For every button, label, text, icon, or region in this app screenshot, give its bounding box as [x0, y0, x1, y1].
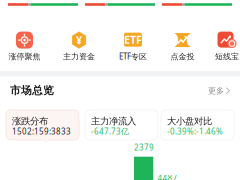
- button[interactable]: 市场总览: [10, 84, 54, 97]
- staticText: ETF专区: [119, 51, 147, 62]
- staticText: 涨停聚焦: [8, 52, 40, 61]
- staticText: 1502:159:3833: [12, 126, 71, 137]
- staticText: ¥: [76, 33, 82, 47]
- staticText: -0.39%:-1.46%: [167, 126, 223, 137]
- staticText: 4487: [157, 172, 177, 180]
- button[interactable]: 主力净流入: [85, 110, 158, 140]
- button[interactable]: ETF: [110, 31, 156, 61]
- staticText: 主力资金: [63, 52, 95, 61]
- staticText: 涨跌分布: [12, 115, 48, 127]
- staticText: -647.73亿: [91, 126, 129, 137]
- staticText: 更多: [208, 86, 224, 96]
- button[interactable]: 点金投: [159, 31, 205, 61]
- button[interactable]: 涨停聚焦: [1, 31, 47, 61]
- button[interactable]: 涨跌分布: [6, 110, 79, 140]
- button[interactable]: 大小盘对比: [161, 110, 234, 140]
- button[interactable]: 更多: [208, 86, 230, 96]
- staticText: 短线宝: [215, 52, 239, 61]
- staticText: 2379: [134, 142, 154, 153]
- button[interactable]: 短线宝: [204, 31, 240, 61]
- staticText: 主力净流入: [91, 115, 136, 127]
- button[interactable]: ¥: [56, 31, 102, 61]
- staticText: ETF: [124, 33, 142, 47]
- staticText: 大小盘对比: [167, 115, 212, 127]
- staticText: 市场总览: [10, 84, 54, 97]
- staticText: 点金投: [170, 52, 194, 61]
